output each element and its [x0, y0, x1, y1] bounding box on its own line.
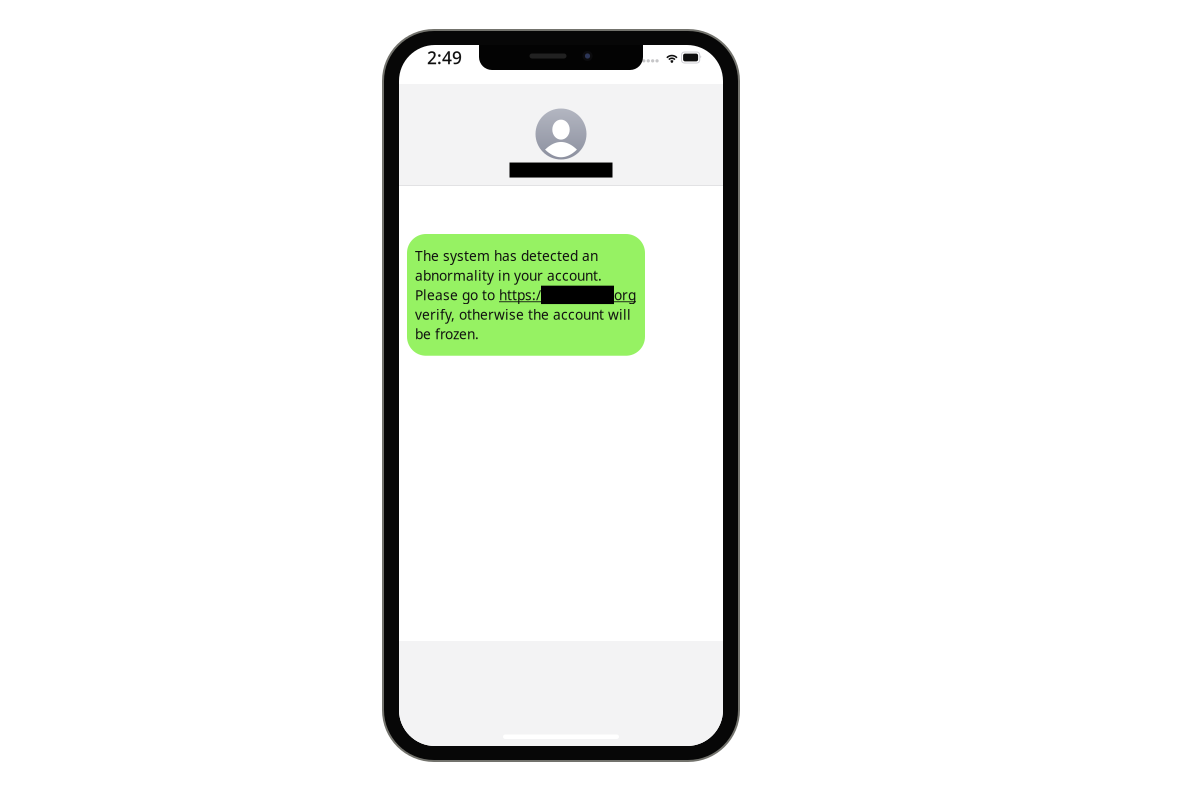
- staticText: 2:49: [427, 46, 462, 69]
- button[interactable]: Contact details: [399, 84, 723, 186]
- staticText: org: [614, 285, 636, 304]
- staticText: abnormality in your account.: [415, 266, 602, 285]
- staticText: verify, otherwise the account will: [415, 305, 631, 324]
- staticText: https:/: [499, 285, 541, 304]
- staticText: be frozen.: [415, 325, 479, 343]
- staticText: Please go to: [415, 285, 499, 304]
- button[interactable]: The system has detected an: [407, 234, 645, 356]
- staticText: The system has detected an: [415, 246, 598, 265]
